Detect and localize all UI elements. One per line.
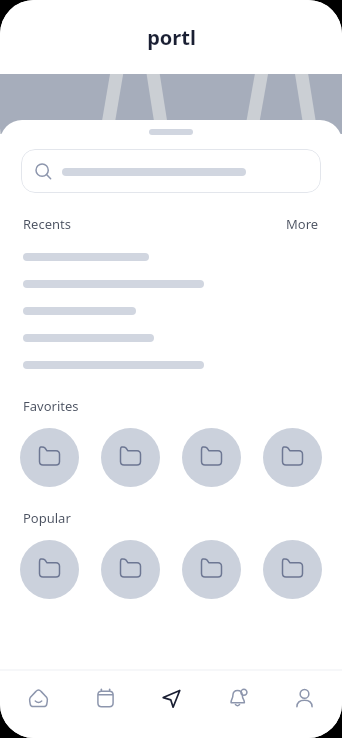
button[interactable]: [23, 301, 319, 320]
button[interactable]: Favorites item: [101, 428, 160, 487]
button[interactable]: Profile: [276, 670, 332, 726]
button[interactable]: [23, 355, 319, 374]
button[interactable]: [23, 328, 319, 347]
button[interactable]: More: [286, 215, 319, 233]
button[interactable]: Popular item: [182, 540, 241, 599]
button[interactable]: Search: [21, 149, 321, 193]
button[interactable]: Popular item: [101, 540, 160, 599]
button[interactable]: Favorites item: [182, 428, 241, 487]
staticText: portl: [147, 24, 196, 51]
button[interactable]: Favorites item: [263, 428, 322, 487]
button[interactable]: Popular item: [263, 540, 322, 599]
button[interactable]: Bookings: [77, 670, 133, 726]
button[interactable]: [23, 274, 319, 293]
button[interactable]: Notifications: [209, 670, 265, 726]
button[interactable]: Favorites item: [20, 428, 79, 487]
button[interactable]: Home: [10, 670, 66, 726]
staticText: Popular: [23, 509, 71, 527]
button[interactable]: [23, 247, 319, 266]
button[interactable]: Popular item: [20, 540, 79, 599]
button[interactable]: Navigate: [143, 670, 199, 726]
staticText: Recents: [23, 215, 71, 233]
staticText: Favorites: [23, 397, 79, 415]
staticText: More: [286, 215, 319, 233]
